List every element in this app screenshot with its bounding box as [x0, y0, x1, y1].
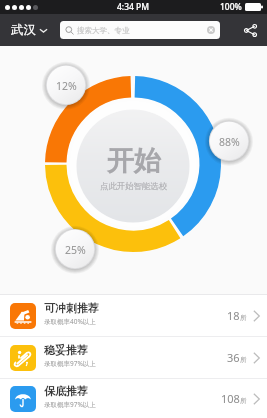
- staticText: 可冲刺推荐: [44, 301, 99, 315]
- staticText: 88%: [219, 135, 240, 149]
- staticText: 开始: [107, 144, 161, 178]
- staticText: 所: [240, 356, 247, 364]
- staticText: 搜索大学、专业: [77, 26, 130, 35]
- staticText: 武汉: [11, 22, 36, 38]
- staticText: 所: [240, 397, 247, 405]
- staticText: 点此开始智能选校: [100, 181, 168, 192]
- staticText: 所: [240, 314, 247, 322]
- button[interactable]: 保底推荐: [0, 379, 267, 418]
- staticText: 保底推荐: [44, 384, 88, 398]
- staticText: 100%: [220, 1, 242, 13]
- staticText: 25%: [65, 243, 86, 257]
- staticText: 12%: [56, 79, 77, 93]
- staticText: 稳妥推荐: [44, 343, 88, 357]
- staticText: 录取概率97%以上: [44, 400, 96, 409]
- staticText: 18: [227, 308, 240, 323]
- staticText: 录取概率97%以上: [44, 359, 96, 368]
- button[interactable]: 稳妥推荐: [0, 337, 267, 378]
- button[interactable]: 武汉: [11, 22, 48, 38]
- staticText: 录取概率40%以上: [44, 317, 96, 326]
- button[interactable]: Share: [238, 18, 262, 42]
- button[interactable]: 搜索大学、专业: [60, 21, 220, 39]
- button[interactable]: 可冲刺推荐: [0, 295, 267, 336]
- staticText: 108: [221, 391, 240, 406]
- staticText: 4:34 PM: [117, 1, 150, 13]
- staticText: 36: [227, 350, 240, 365]
